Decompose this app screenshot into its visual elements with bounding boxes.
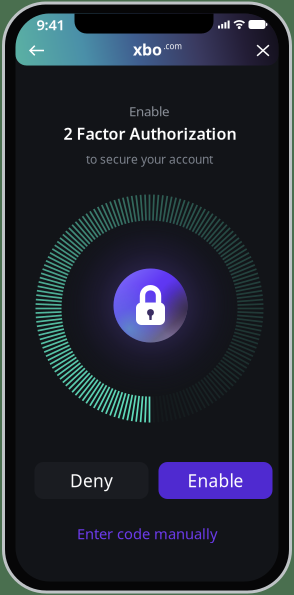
button[interactable]: Deny <box>34 462 148 499</box>
staticText: 9:41 <box>36 15 64 34</box>
staticText: Enable <box>129 102 170 120</box>
staticText: Enter code manually <box>77 524 217 543</box>
staticText: .com <box>163 41 181 51</box>
staticText: Deny <box>70 469 113 492</box>
staticText: 2 Factor Authorization <box>63 123 236 144</box>
button[interactable]: Enable <box>158 462 272 499</box>
staticText: Enable <box>187 469 243 492</box>
staticText: to secure your account <box>86 151 213 167</box>
button[interactable]: Enter code manually <box>77 522 217 544</box>
button[interactable]: Back <box>19 36 55 64</box>
staticText: xbo <box>133 39 162 60</box>
button[interactable]: Close <box>247 36 279 64</box>
